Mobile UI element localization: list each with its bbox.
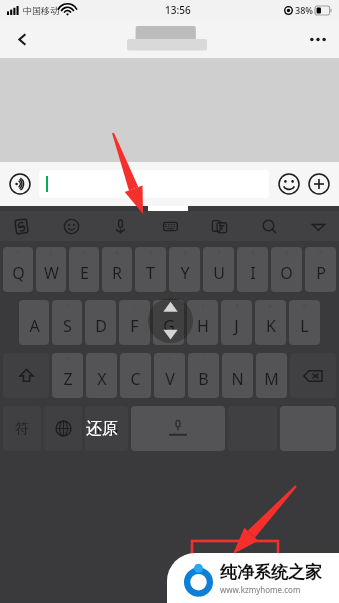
staticText: X [97,368,107,390]
button[interactable]: 8 [237,247,268,292]
button[interactable]: 7 [203,247,234,292]
staticText: Y [180,262,190,284]
button[interactable]: ~ [222,353,253,398]
staticText: O [280,262,293,284]
button[interactable]: Keyboard layout [157,213,183,239]
button[interactable]: Voice input [7,171,33,197]
staticText: N [231,368,244,390]
staticText: 13:56 [165,3,191,17]
button[interactable]: Delete [290,353,336,398]
button[interactable]: ! [188,353,219,398]
button[interactable]: : [85,300,116,345]
button[interactable]: Search [256,213,282,239]
button[interactable]: Emoticons [58,213,84,239]
button[interactable]: 0 [305,247,336,292]
button[interactable]: Shift [3,353,49,398]
button[interactable]: 3 [69,247,99,292]
staticText: D [95,315,107,337]
staticText: I [250,262,256,284]
button[interactable]: 9 [271,247,302,292]
staticText: B [198,368,209,390]
staticText: W [44,262,59,284]
button[interactable] [39,170,269,198]
button[interactable]: ; [119,300,150,345]
staticText: www.kzmyhome.com [220,584,301,595]
button[interactable]: More functions [306,171,332,197]
button[interactable]: 2 [36,247,66,292]
staticText: H [197,315,209,337]
staticText: 纯净系统之家 [220,562,322,583]
button[interactable]: & [255,300,286,345]
button[interactable]: More options [303,24,333,54]
staticText: K [266,315,276,337]
button[interactable]: Hide keyboard [305,213,331,239]
button[interactable]: Voice [107,213,133,239]
button[interactable]: 5 [135,247,166,292]
staticText: E [80,262,89,284]
button[interactable]: ( [153,300,184,345]
staticText: Z [63,368,73,390]
button[interactable]: Sogou input [8,213,34,239]
staticText: 38% [295,4,313,16]
staticText: 符 [15,420,29,438]
button[interactable]: 123 [85,406,128,451]
button[interactable]: ? [154,353,185,398]
button[interactable]: … [256,353,287,398]
button[interactable]: 符 [3,406,41,451]
button[interactable]: Emoji [276,171,302,197]
staticText: T [146,262,155,284]
button[interactable] [131,406,225,451]
staticText: R [112,262,122,284]
staticText: 123 [94,419,119,438]
button[interactable]: * [52,353,83,398]
button[interactable]: 1 [3,247,33,292]
staticText: F [130,315,139,337]
staticText: P [316,262,326,284]
staticText: U [213,262,225,284]
button[interactable]: Translate [206,213,232,239]
button[interactable]: ' [120,353,151,398]
button[interactable]: 6 [169,247,200,292]
button[interactable]: - [19,300,49,345]
button[interactable]: Back [8,25,36,53]
staticText: M [264,368,279,390]
button[interactable]: 4 [102,247,132,292]
staticText: C [130,368,141,390]
staticText: A [29,315,40,337]
button[interactable]: ¥ [221,300,252,345]
button[interactable]: " [86,353,117,398]
staticText: 中国移动 [23,5,59,16]
button[interactable]: @ [289,300,320,345]
staticText: L [300,315,309,337]
button[interactable]: Switch language [44,406,82,451]
staticText: Q [12,262,25,284]
button[interactable]: ) [187,300,218,345]
button[interactable]: / [52,300,82,345]
staticText: J [234,315,239,337]
staticText: S [63,315,72,337]
